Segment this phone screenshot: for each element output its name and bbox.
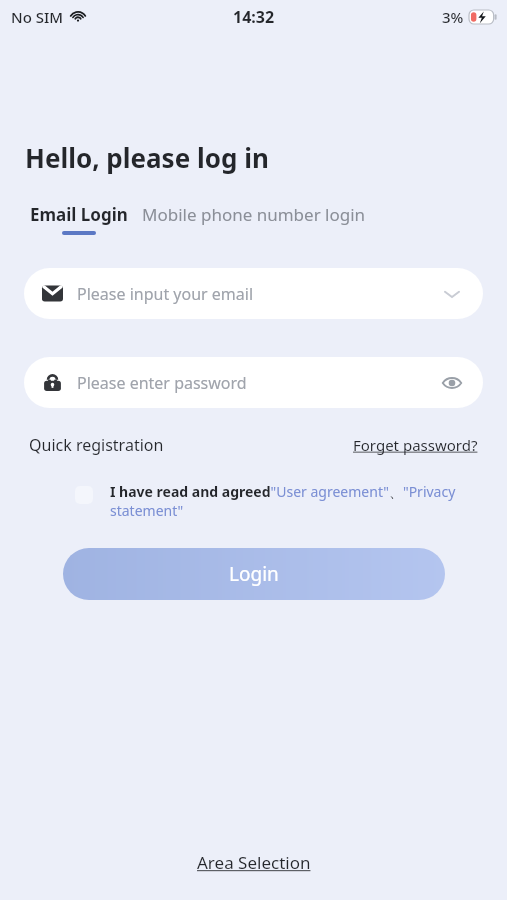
button[interactable]: Login [63, 548, 445, 600]
staticText: Quick registration [29, 434, 164, 456]
button[interactable]: Quick registration [29, 434, 164, 456]
button[interactable]: Show email suggestions [439, 281, 465, 307]
staticText: I have read and agreed"User agreement"、"… [110, 482, 457, 520]
button[interactable]: Email Login [30, 203, 128, 235]
staticText: Forget password? [353, 435, 478, 455]
button[interactable]: Please enter password [24, 357, 483, 408]
button[interactable]: Please input your email [24, 268, 483, 319]
button[interactable]: Toggle password visibility [439, 370, 465, 396]
staticText: Area Selection [197, 851, 311, 874]
staticText: Mobile phone number login [142, 203, 366, 226]
staticText: No SIM [11, 7, 64, 27]
staticText: 3% [442, 7, 464, 27]
staticText: Email Login [30, 203, 128, 226]
staticText: Please input your email [77, 283, 254, 305]
staticText: Login [229, 561, 279, 587]
staticText: Please enter password [77, 372, 247, 394]
button[interactable]: Forget password? [353, 435, 478, 455]
staticText: Hello, please log in [25, 140, 269, 175]
button[interactable]: Area Selection [197, 851, 311, 874]
staticText: 14:32 [233, 6, 275, 28]
button[interactable]: I have read and agreed"User agreement"、"… [75, 482, 457, 520]
button[interactable]: Mobile phone number login [142, 203, 366, 226]
